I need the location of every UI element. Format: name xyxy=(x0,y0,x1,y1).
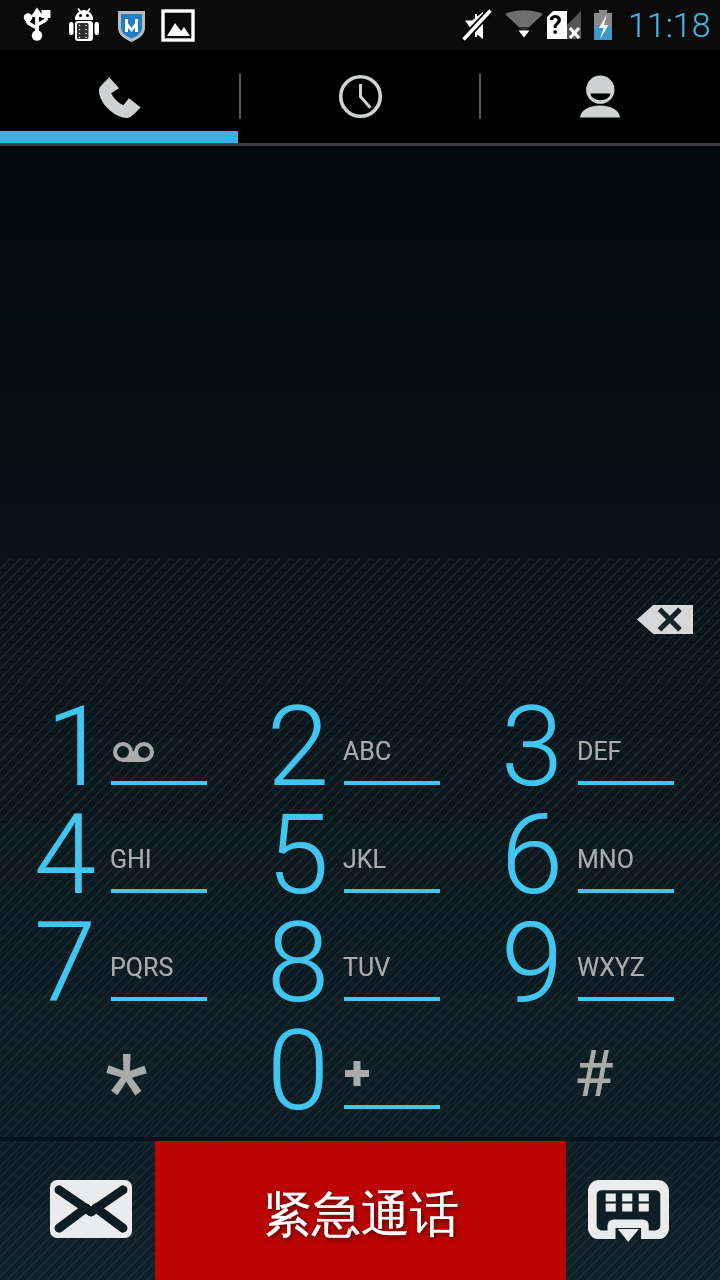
button[interactable]: Message xyxy=(0,1141,155,1280)
staticText: GHI xyxy=(110,845,152,874)
staticText: 7 xyxy=(34,897,97,1005)
button[interactable]: Call log xyxy=(240,50,480,146)
button[interactable]: 9 xyxy=(477,892,710,1000)
button[interactable]: * xyxy=(10,1000,243,1108)
button[interactable]: 5 xyxy=(243,784,476,892)
button[interactable]: # xyxy=(477,1000,710,1108)
staticText: JKL xyxy=(343,845,386,874)
button[interactable]: Delete xyxy=(623,590,707,648)
staticText: 6 xyxy=(501,789,564,897)
staticText: # xyxy=(574,1037,614,1112)
button[interactable]: 紧急通话 xyxy=(155,1141,566,1280)
staticText: DEF xyxy=(577,737,622,766)
staticText: 9 xyxy=(501,897,564,1005)
staticText: ? xyxy=(549,10,562,40)
staticText: TUV xyxy=(343,953,391,982)
staticText: * xyxy=(105,1032,149,1140)
staticText: 0 xyxy=(267,1005,330,1113)
staticText: 11:18 xyxy=(628,5,711,45)
staticText: MNO xyxy=(577,845,634,874)
button[interactable]: 7 xyxy=(10,892,243,1000)
staticText: 1 xyxy=(46,681,109,789)
button[interactable]: 0 xyxy=(243,1000,476,1108)
staticText: 5 xyxy=(267,789,330,897)
button[interactable]: Hide dialpad xyxy=(566,1141,720,1280)
staticText: 4 xyxy=(34,789,97,897)
button[interactable]: Contacts xyxy=(480,50,720,146)
staticText: PQRS xyxy=(110,953,174,982)
button[interactable]: 8 xyxy=(243,892,476,1000)
staticText: 3 xyxy=(501,681,564,789)
staticText: 8 xyxy=(267,897,330,1005)
button[interactable]: 1 xyxy=(10,676,243,784)
staticText: ABC xyxy=(343,737,392,766)
staticText: 2 xyxy=(267,681,330,789)
button[interactable]: 4 xyxy=(10,784,243,892)
button[interactable]: 2 xyxy=(243,676,476,784)
staticText: WXYZ xyxy=(577,953,645,982)
button[interactable]: 3 xyxy=(477,676,710,784)
button[interactable]: 6 xyxy=(477,784,710,892)
button[interactable]: Dialer xyxy=(0,50,240,146)
staticText: 紧急通话 xyxy=(263,1184,459,1246)
